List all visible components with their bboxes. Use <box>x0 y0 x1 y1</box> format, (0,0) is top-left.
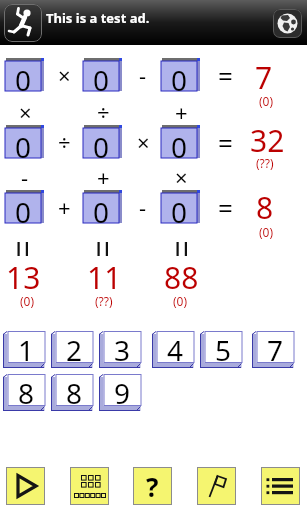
staticText: 11 <box>87 257 122 298</box>
staticText: 0 <box>15 61 32 91</box>
staticText: + <box>58 192 71 222</box>
button[interactable]: 0 <box>83 58 122 91</box>
button[interactable]: 8 <box>3 374 45 411</box>
staticText: ÷ <box>58 127 71 157</box>
staticText: 8 <box>66 374 83 406</box>
button[interactable]: 3 <box>99 331 141 368</box>
staticText: 0 <box>93 61 110 91</box>
button[interactable]: 0 <box>5 125 44 158</box>
button[interactable]: 9 <box>99 374 141 411</box>
button[interactable]: 7 <box>252 331 294 368</box>
staticText: 0 <box>15 193 32 223</box>
button[interactable]: 0 <box>161 58 200 91</box>
staticText: ÷ <box>97 97 110 127</box>
staticText: 8 <box>18 374 35 406</box>
staticText: 9 <box>114 374 131 406</box>
staticText: × <box>175 162 188 192</box>
button[interactable]: 0 <box>161 190 200 223</box>
staticText: - <box>21 162 29 192</box>
staticText: 0 <box>171 61 188 91</box>
staticText: 0 <box>93 128 110 158</box>
staticText: (0) <box>20 293 35 309</box>
staticText: 32 <box>250 120 285 161</box>
button[interactable] <box>197 467 236 505</box>
staticText: 0 <box>171 128 188 158</box>
staticText: 0 <box>15 128 32 158</box>
staticText: = <box>218 125 233 160</box>
staticText: (0) <box>259 93 274 109</box>
staticText: 4 <box>167 331 184 363</box>
button[interactable]: 1 <box>3 331 45 368</box>
button[interactable]: This is a test ad. <box>0 0 307 45</box>
staticText: (0) <box>259 224 274 240</box>
button[interactable]: 8 <box>51 374 93 411</box>
staticText: 0 <box>171 193 188 223</box>
staticText: 7 <box>267 331 284 363</box>
staticText: 5 <box>215 331 232 363</box>
button[interactable]: 0 <box>161 125 200 158</box>
button[interactable] <box>70 467 109 505</box>
staticText: (0) <box>173 293 188 309</box>
button[interactable]: 0 <box>83 125 122 158</box>
staticText: ? <box>146 469 159 504</box>
staticText: = <box>218 190 233 225</box>
staticText: 1 <box>18 331 35 363</box>
staticText: - <box>139 192 147 222</box>
staticText: × <box>58 60 71 90</box>
button[interactable]: 5 <box>200 331 242 368</box>
button[interactable]: ? <box>133 467 172 505</box>
button[interactable] <box>261 467 300 505</box>
button[interactable]: 2 <box>51 331 93 368</box>
button[interactable]: 0 <box>83 190 122 223</box>
staticText: 88 <box>164 257 199 298</box>
staticText: (??) <box>256 155 274 171</box>
staticText: 7 <box>255 57 273 98</box>
staticText: 13 <box>6 257 41 298</box>
staticText: 2 <box>66 331 83 363</box>
button[interactable]: 4 <box>152 331 194 368</box>
button[interactable] <box>6 467 45 505</box>
button[interactable]: 0 <box>5 58 44 91</box>
staticText: This is a test ad. <box>46 9 150 27</box>
staticText: × <box>19 97 32 127</box>
staticText: + <box>97 162 110 192</box>
staticText: + <box>175 97 188 127</box>
staticText: (??) <box>95 293 113 309</box>
staticText: 8 <box>256 187 274 228</box>
staticText: 0 <box>93 193 110 223</box>
button[interactable]: 0 <box>5 190 44 223</box>
staticText: × <box>137 127 150 157</box>
staticText: 3 <box>114 331 131 363</box>
staticText: - <box>139 60 147 90</box>
staticText: = <box>218 58 233 93</box>
